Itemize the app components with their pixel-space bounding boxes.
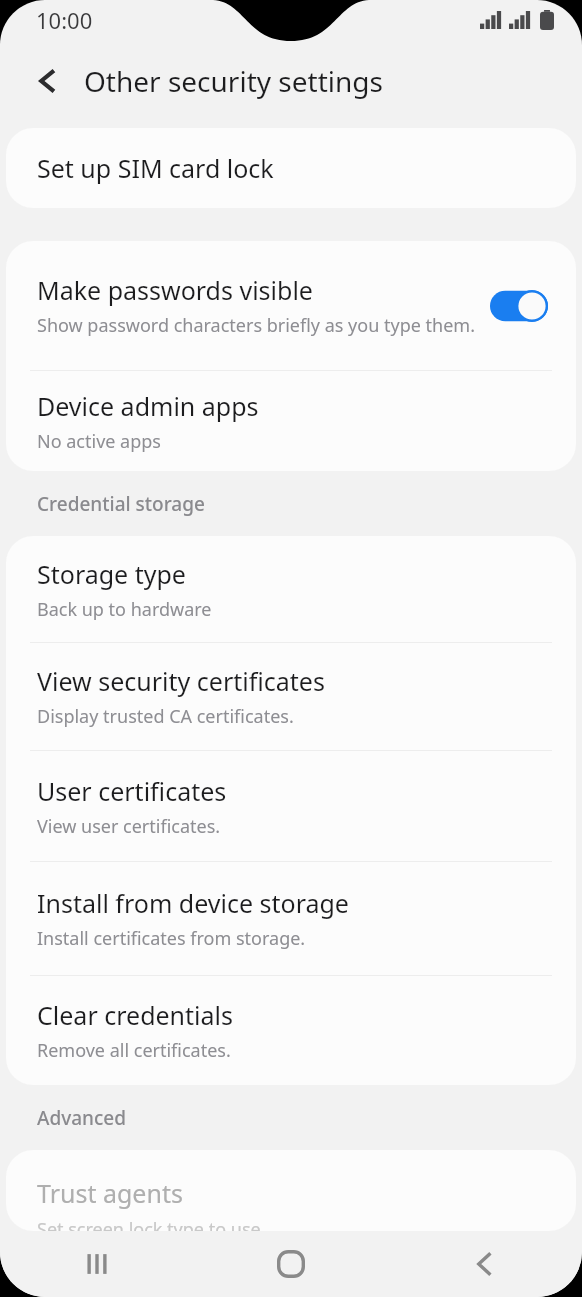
- staticText: User certificates: [37, 774, 227, 808]
- button[interactable]: Trust agents: [6, 1150, 576, 1231]
- button[interactable]: Home: [194, 1231, 388, 1297]
- staticText: Show password characters briefly as you …: [37, 313, 475, 338]
- staticText: Set screen lock type to use.: [37, 1217, 266, 1231]
- staticText: Display trusted CA certificates.: [37, 704, 294, 729]
- staticText: View security certificates: [37, 664, 325, 698]
- button[interactable]: Make passwords visible toggle: [488, 286, 550, 326]
- staticText: Advanced: [37, 1105, 127, 1131]
- button[interactable]: User certificates: [6, 751, 576, 861]
- staticText: Clear credentials: [37, 998, 233, 1032]
- button[interactable]: View security certificates: [6, 643, 576, 750]
- staticText: View user certificates.: [37, 814, 221, 839]
- staticText: Install from device storage: [37, 886, 349, 920]
- staticText: Remove all certificates.: [37, 1038, 231, 1063]
- button[interactable]: Navigate up: [22, 55, 74, 107]
- button[interactable]: Install from device storage: [6, 862, 576, 975]
- button[interactable]: Recent apps: [0, 1231, 194, 1297]
- button[interactable]: Clear credentials: [6, 976, 576, 1085]
- staticText: 10:00: [36, 5, 93, 35]
- staticText: Credential storage: [37, 491, 205, 517]
- staticText: Storage type: [37, 557, 186, 591]
- staticText: Other security settings: [84, 62, 383, 100]
- button[interactable]: Make passwords visible: [6, 241, 576, 370]
- button[interactable]: Device admin apps: [6, 371, 576, 471]
- staticText: Device admin apps: [37, 389, 259, 423]
- button[interactable]: Set up SIM card lock: [6, 128, 576, 208]
- staticText: Make passwords visible: [37, 273, 313, 307]
- staticText: No active apps: [37, 429, 161, 454]
- staticText: Back up to hardware: [37, 597, 212, 622]
- staticText: Install certificates from storage.: [37, 926, 306, 951]
- button[interactable]: Storage type: [6, 536, 576, 642]
- staticText: Set up SIM card lock: [37, 151, 274, 185]
- button[interactable]: Back: [388, 1231, 582, 1297]
- staticText: Trust agents: [37, 1176, 183, 1210]
